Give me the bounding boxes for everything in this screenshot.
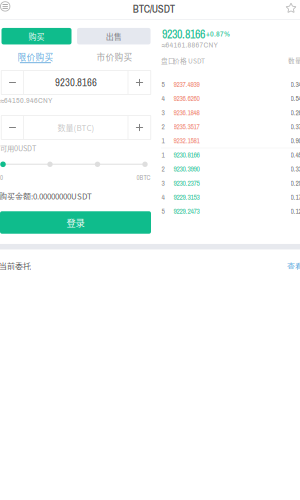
staticText: 出售: [106, 30, 122, 42]
staticText: 4: [161, 192, 164, 202]
staticText: ≈64161.8867CNY: [161, 39, 217, 50]
staticText: 1: [161, 150, 164, 160]
staticText: 数量(BTC): [57, 122, 94, 133]
staticText: 登录: [66, 216, 84, 229]
staticText: 0.3712: [290, 122, 300, 132]
staticText: 价格 USDT: [173, 56, 205, 65]
staticText: 0.9024: [290, 136, 300, 146]
staticText: 9230.8166: [173, 150, 199, 160]
staticText: 0.1265: [290, 206, 300, 216]
button[interactable]: 出售: [77, 28, 150, 44]
staticText: 0.2678: [290, 108, 300, 117]
button[interactable]: 查看: [286, 260, 300, 272]
staticText: 3: [161, 178, 164, 188]
staticText: 数量: [288, 56, 300, 65]
button[interactable]: 限价购买: [0, 48, 72, 68]
button[interactable]: Increase: [128, 116, 150, 139]
staticText: 2: [161, 122, 164, 132]
staticText: 9229.2473: [173, 206, 199, 216]
staticText: 3: [161, 108, 164, 117]
staticText: 可用0USDT: [0, 143, 36, 153]
staticText: 5: [161, 79, 164, 89]
staticText: 0: [0, 173, 3, 182]
staticText: 4: [161, 93, 164, 103]
staticText: 限价购买: [17, 50, 53, 63]
staticText: 0.5432: [290, 93, 300, 103]
staticText: 9237.4939: [173, 79, 199, 89]
staticText: 0.1794: [290, 192, 300, 202]
staticText: 0.2947: [290, 178, 300, 188]
staticText: +0.87%: [206, 28, 230, 39]
staticText: 9235.3517: [173, 122, 199, 132]
staticText: 0BTC: [136, 173, 150, 182]
staticText: 购买: [28, 30, 44, 42]
staticText: 0.3456: [290, 79, 300, 89]
button[interactable]: 购买: [1, 28, 71, 44]
button[interactable]: 市价购买: [78, 48, 150, 66]
staticText: 5: [161, 206, 164, 216]
staticText: 9229.3153: [173, 192, 199, 202]
staticText: 9230.8166: [162, 26, 205, 42]
staticText: 2: [161, 164, 164, 174]
staticText: 9232.1581: [173, 136, 199, 146]
staticText: 9236.6260: [173, 93, 199, 103]
staticText: 查看: [287, 260, 300, 272]
staticText: 0.3361: [290, 164, 300, 174]
staticText: 盘口: [161, 56, 175, 65]
staticText: 购买金额:0.00000000USDT: [0, 190, 92, 202]
button[interactable]: Decrease: [1, 116, 23, 139]
staticText: 9230.3990: [173, 164, 199, 174]
button[interactable]: 登录: [0, 211, 151, 234]
button[interactable]: Add to favourites: [285, 2, 297, 14]
button[interactable]: Menu: [0, 0, 12, 13]
button[interactable]: Increase: [128, 71, 150, 94]
staticText: ≈64150.946CNY: [0, 95, 52, 105]
staticText: 9230.2375: [173, 178, 199, 188]
button[interactable]: Amount slider: [0, 161, 6, 167]
staticText: 市价购买: [96, 50, 132, 63]
staticText: 1: [161, 136, 164, 146]
staticText: BTC/USDT: [133, 2, 175, 16]
button[interactable]: Decrease: [1, 71, 23, 94]
staticText: 9230.8166: [55, 75, 97, 90]
staticText: 0.4583: [290, 150, 300, 160]
staticText: 当前委托: [0, 260, 31, 272]
staticText: 9236.1848: [173, 108, 199, 117]
